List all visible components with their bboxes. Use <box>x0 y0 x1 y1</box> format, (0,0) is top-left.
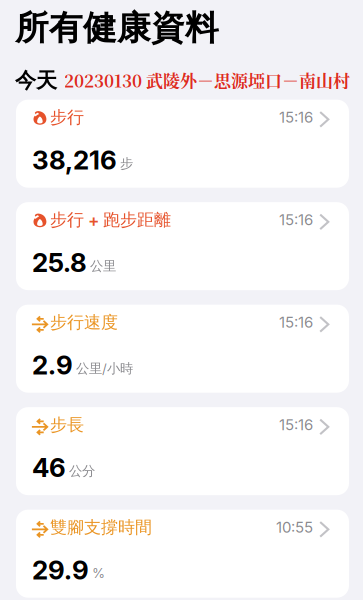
staticText: % <box>92 565 105 581</box>
staticText: 公里 <box>90 258 116 274</box>
button[interactable]: 雙腳支撐時間 <box>16 510 349 598</box>
button[interactable]: 步行速度 <box>16 305 349 393</box>
staticText: 步行速度 <box>50 312 118 333</box>
staticText: 20230130 武陵外－思源埡口－南山村 <box>64 68 350 92</box>
staticText: 10:55 <box>276 518 313 536</box>
staticText: 公分 <box>69 463 95 479</box>
staticText: 2.9 <box>32 349 73 381</box>
button[interactable]: 步長 <box>16 407 349 495</box>
staticText: 15:16 <box>279 313 313 331</box>
staticText: 步行 + 跑步距離 <box>50 209 171 231</box>
staticText: 公里/小時 <box>76 360 133 377</box>
staticText: 15:16 <box>279 108 313 126</box>
button[interactable]: 步行 <box>16 100 349 188</box>
staticText: 46 <box>32 452 66 483</box>
staticText: 15:16 <box>279 416 313 434</box>
staticText: 所有健康資料 <box>15 7 219 49</box>
staticText: 25.8 <box>32 247 87 278</box>
staticText: 29.9 <box>32 554 89 586</box>
staticText: 步行 <box>50 107 84 128</box>
staticText: 今天 <box>15 67 57 94</box>
staticText: 步長 <box>50 414 84 436</box>
staticText: 步 <box>120 155 133 172</box>
button[interactable]: 步行 + 跑步距離 <box>16 202 349 290</box>
staticText: 15:16 <box>279 211 313 229</box>
staticText: 雙腳支撐時間 <box>50 517 152 538</box>
staticText: 38,216 <box>32 144 117 176</box>
